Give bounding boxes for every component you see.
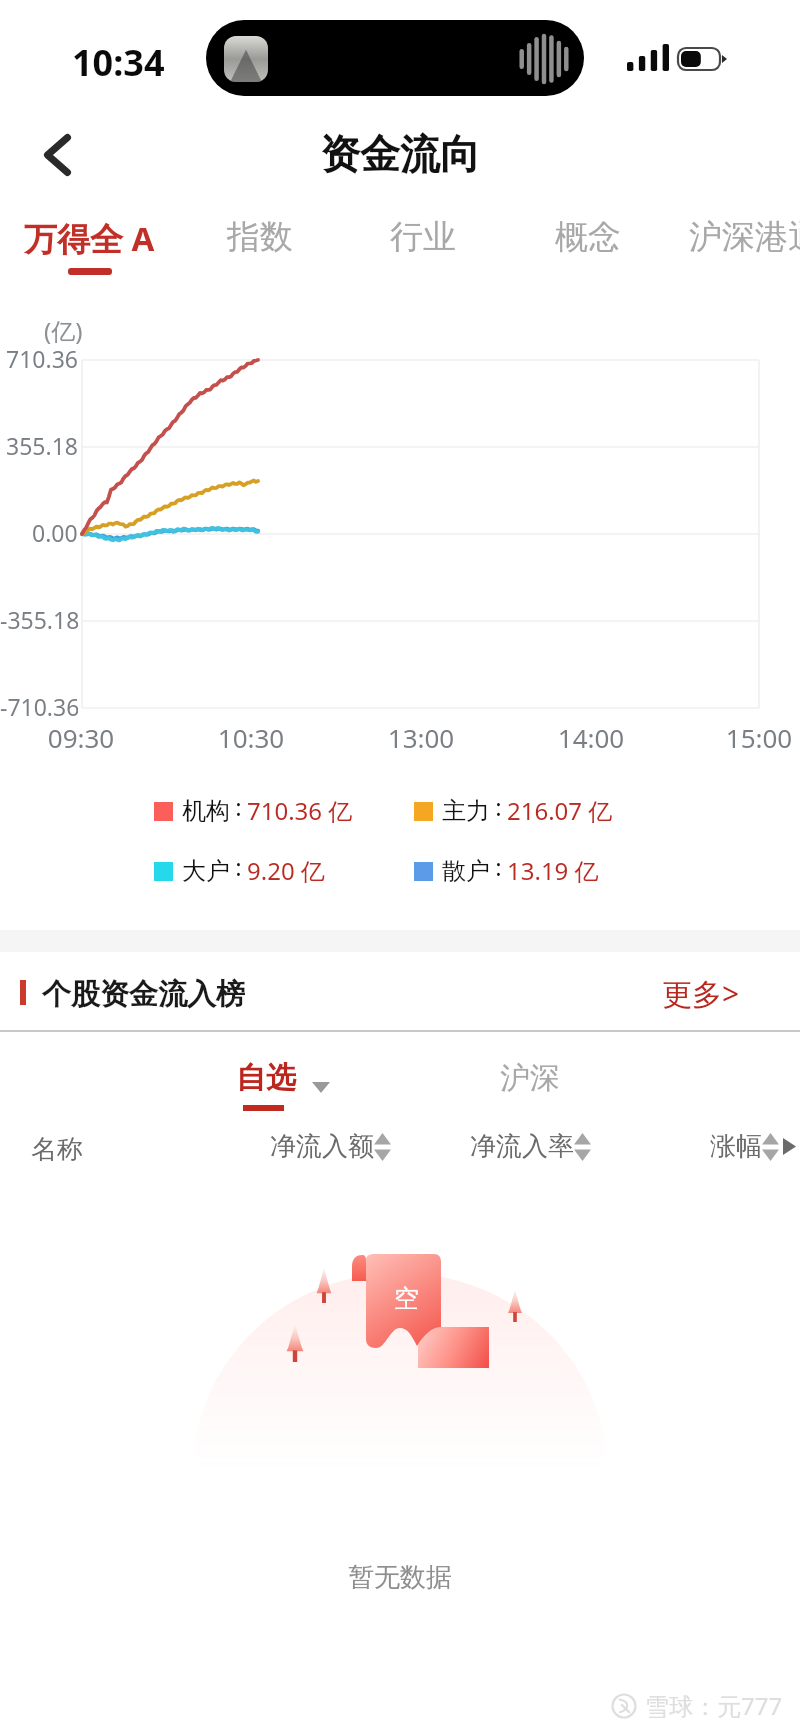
staticText: 10:34 — [72, 38, 165, 87]
staticText: -355.18 — [0, 604, 78, 635]
staticText: 13.19 亿 — [507, 854, 599, 887]
staticText: : — [230, 850, 247, 883]
staticText: 净流入额 — [270, 1130, 374, 1163]
staticText: 自选 — [236, 1059, 296, 1097]
staticText: 个股资金流入榜 — [42, 976, 245, 1013]
button[interactable]: 沪深 — [460, 1040, 600, 1100]
button[interactable]: 自选 — [190, 1040, 340, 1118]
button[interactable]: Back — [20, 110, 116, 198]
button[interactable]: 沪深港通 — [665, 216, 800, 292]
button[interactable]: 万得全 A — [0, 216, 179, 292]
button[interactable]: 概念 — [498, 216, 678, 292]
staticText: 雪球：元777 — [645, 1689, 783, 1722]
button[interactable]: 个股资金流入榜 — [0, 954, 800, 1030]
staticText: 710.36 — [6, 343, 78, 374]
staticText: 机构 — [182, 796, 230, 826]
button[interactable]: 涨幅 — [710, 1130, 796, 1163]
staticText: 沪深 — [500, 1059, 560, 1097]
button[interactable]: 更多> — [646, 968, 756, 1018]
staticText: 概念 — [555, 216, 621, 258]
staticText: 0.00 — [32, 517, 78, 548]
staticText: 09:30 — [41, 720, 121, 755]
staticText: 355.18 — [6, 430, 78, 461]
staticText: -710.36 — [0, 691, 78, 722]
staticText: 名称 — [31, 1133, 83, 1166]
staticText: 指数 — [227, 216, 293, 258]
staticText: 空 — [394, 1283, 419, 1314]
staticText: 更多> — [662, 973, 740, 1014]
staticText: 资金流向 — [320, 129, 480, 179]
staticText: 14:00 — [551, 720, 631, 755]
staticText: 13:00 — [381, 720, 461, 755]
staticText: 主力 — [442, 796, 490, 826]
staticText: 大户 — [182, 856, 230, 886]
button[interactable]: 净流入率 — [470, 1130, 591, 1163]
staticText: 净流入率 — [470, 1130, 574, 1163]
staticText: 216.07 亿 — [507, 794, 613, 827]
staticText: : — [230, 790, 247, 823]
staticText: 沪深港通 — [689, 216, 800, 258]
staticText: 9.20 亿 — [247, 854, 325, 887]
staticText: 710.36 亿 — [247, 794, 353, 827]
staticText: (亿) — [44, 314, 83, 347]
button[interactable]: 净流入额 — [270, 1130, 391, 1163]
button[interactable]: 名称 — [2, 1118, 112, 1180]
button[interactable]: 指数 — [170, 216, 350, 292]
staticText: 散户 — [442, 856, 490, 886]
button[interactable]: 行业 — [333, 216, 513, 292]
staticText: 涨幅 — [710, 1130, 762, 1163]
staticText: : — [490, 850, 507, 883]
staticText: 万得全 A — [24, 216, 155, 261]
staticText: 暂无数据 — [0, 1561, 800, 1594]
staticText: 行业 — [390, 216, 456, 258]
staticText: 15:00 — [719, 720, 799, 755]
staticText: 10:30 — [211, 720, 291, 755]
staticText: : — [490, 790, 507, 823]
